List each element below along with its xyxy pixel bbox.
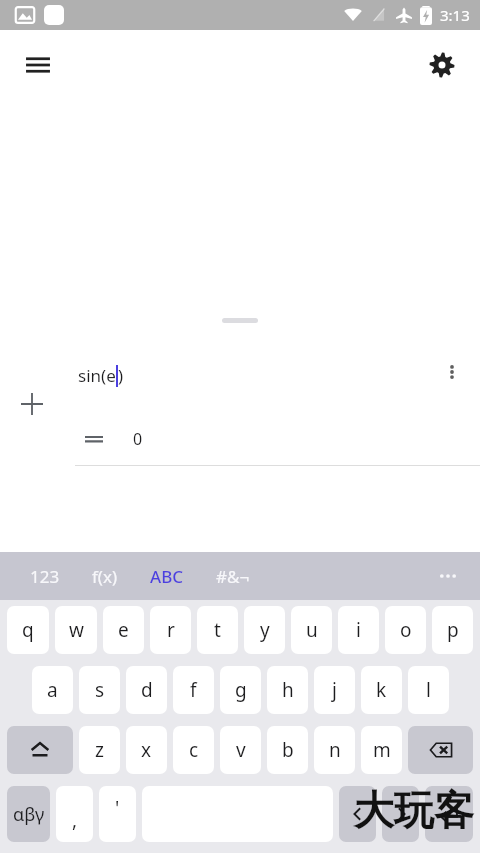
staticText: )	[118, 364, 124, 387]
button[interactable]: b	[267, 726, 308, 774]
button[interactable]: j	[314, 666, 355, 714]
button[interactable]: g	[220, 666, 261, 714]
button[interactable]: c	[173, 726, 214, 774]
staticText: 123	[30, 565, 60, 588]
staticText: 3:13	[440, 5, 470, 25]
staticText: 0	[133, 428, 143, 450]
button[interactable]: z	[79, 726, 120, 774]
button[interactable]: q	[7, 606, 49, 654]
button[interactable]: ABC	[136, 552, 198, 600]
button[interactable]: Left	[339, 786, 376, 842]
staticText: m	[373, 737, 391, 763]
staticText: d	[141, 677, 153, 703]
staticText: c	[189, 737, 199, 763]
button[interactable]: e	[103, 606, 144, 654]
staticText: ,	[72, 807, 78, 833]
staticText: z	[95, 737, 104, 763]
staticText: q	[22, 617, 34, 643]
button[interactable]: w	[55, 606, 97, 654]
button[interactable]: #&¬	[202, 552, 264, 600]
button[interactable]: d	[126, 666, 167, 714]
button[interactable]: More options	[430, 350, 474, 394]
button[interactable]: s	[79, 666, 120, 714]
button[interactable]: i	[338, 606, 379, 654]
staticText: u	[306, 617, 318, 643]
staticText: f(x)	[92, 565, 118, 588]
button[interactable]: v	[220, 726, 261, 774]
staticText: p	[447, 617, 459, 643]
button[interactable]: ,	[56, 786, 93, 842]
button[interactable]: p	[432, 606, 473, 654]
button[interactable]: k	[361, 666, 402, 714]
button[interactable]: t	[197, 606, 238, 654]
button[interactable]: f(x)	[78, 552, 132, 600]
staticText: t	[214, 617, 221, 643]
staticText: j	[332, 677, 337, 703]
button[interactable]: n	[314, 726, 355, 774]
staticText: r	[167, 617, 175, 643]
staticText: sin(e	[78, 364, 116, 387]
button[interactable]: h	[267, 666, 308, 714]
button[interactable]: Menu	[14, 41, 62, 89]
staticText: h	[282, 677, 294, 703]
staticText: k	[376, 677, 387, 703]
staticText: n	[329, 737, 341, 763]
button[interactable]: a	[32, 666, 73, 714]
staticText: s	[95, 677, 105, 703]
staticText: f	[190, 677, 197, 703]
staticText: i	[356, 617, 361, 643]
button[interactable]: r	[150, 606, 191, 654]
button[interactable]: Shift	[7, 726, 73, 774]
button[interactable]: Right	[382, 786, 419, 842]
button[interactable]: m	[361, 726, 402, 774]
staticText: ABC	[150, 565, 184, 588]
staticText: a	[47, 677, 58, 703]
staticText: #&¬	[216, 565, 250, 588]
button[interactable]: o	[385, 606, 426, 654]
staticText: 大玩客	[354, 785, 474, 835]
staticText: '	[115, 795, 120, 821]
button[interactable]: 123	[16, 552, 74, 600]
staticText: g	[235, 677, 247, 703]
button[interactable]: Add expression	[10, 382, 54, 426]
button[interactable]: Enter	[425, 786, 473, 842]
staticText: αβγ	[13, 802, 45, 827]
button[interactable]: More keyboards	[428, 556, 468, 596]
staticText: o	[400, 617, 412, 643]
button[interactable]: x	[126, 726, 167, 774]
staticText: l	[426, 677, 431, 703]
staticText: w	[69, 617, 84, 643]
button[interactable]: l	[408, 666, 449, 714]
button[interactable]: Backspace	[408, 726, 473, 774]
button[interactable]: u	[291, 606, 332, 654]
button[interactable]: αβγ	[7, 786, 50, 842]
staticText: e	[118, 617, 129, 643]
staticText: b	[282, 737, 294, 763]
button[interactable]: '	[99, 786, 136, 842]
staticText: y	[260, 617, 270, 643]
button[interactable]: Settings	[418, 41, 466, 89]
staticText: v	[236, 737, 246, 763]
button[interactable]: f	[173, 666, 214, 714]
button[interactable]: y	[244, 606, 285, 654]
staticText: x	[141, 737, 152, 763]
